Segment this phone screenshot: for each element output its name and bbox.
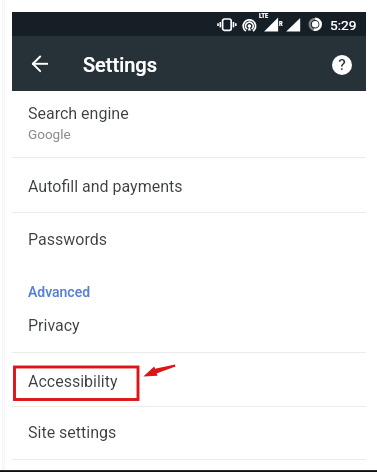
- button[interactable]: Autofill and payments: [12, 158, 366, 212]
- button[interactable]: Back: [24, 48, 56, 80]
- staticText: 5:29: [330, 17, 357, 33]
- button[interactable]: Accessibility: [12, 353, 366, 405]
- staticText: R: [279, 20, 283, 28]
- staticText: Search engine: [28, 104, 129, 123]
- staticText: Passwords: [28, 230, 107, 249]
- staticText: Advanced: [28, 284, 91, 300]
- staticText: Autofill and payments: [28, 177, 183, 196]
- staticText: ?: [338, 56, 346, 74]
- staticText: Settings: [83, 53, 158, 76]
- staticText: Google: [28, 126, 71, 142]
- staticText: Site settings: [28, 423, 117, 442]
- staticText: Accessibility: [28, 372, 118, 391]
- button[interactable]: Passwords: [12, 213, 366, 267]
- button[interactable]: Help: [328, 51, 355, 78]
- button[interactable]: Site settings: [12, 407, 366, 458]
- staticText: Privacy: [28, 316, 80, 335]
- button[interactable]: Search engine: [12, 91, 366, 157]
- staticText: LTE: [259, 11, 268, 20]
- button[interactable]: Privacy: [12, 306, 366, 351]
